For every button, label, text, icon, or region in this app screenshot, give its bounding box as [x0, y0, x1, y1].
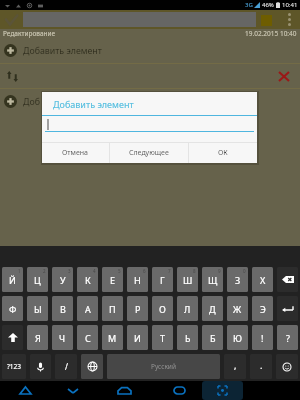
button[interactable]: !	[252, 325, 273, 350]
button[interactable]: Delete	[273, 64, 295, 88]
staticText: М	[108, 332, 117, 344]
staticText: Следующее	[129, 148, 169, 158]
button[interactable]: ОК	[189, 143, 257, 163]
button[interactable]: Следующее	[110, 143, 188, 163]
button[interactable]: С	[77, 325, 98, 350]
button[interactable]: Г	[152, 267, 173, 292]
staticText: Я	[35, 332, 41, 344]
staticText: 5	[118, 268, 121, 274]
staticText: 2	[43, 268, 46, 274]
staticText: ОК	[218, 148, 228, 158]
button[interactable]: Б	[202, 325, 223, 350]
button[interactable]: Change language	[81, 354, 103, 379]
staticText: Ш	[183, 274, 193, 286]
staticText: Ж	[233, 303, 242, 315]
button[interactable]: Delete	[0, 64, 300, 88]
staticText: Ь	[185, 332, 191, 344]
button[interactable]: Recent apps	[157, 381, 201, 400]
staticText: В	[60, 303, 66, 315]
staticText: 6	[143, 268, 146, 274]
button[interactable]: Л	[177, 296, 198, 321]
staticText: П	[109, 303, 116, 315]
button[interactable]: ?	[277, 325, 298, 350]
button[interactable]: З	[227, 267, 248, 292]
button[interactable]: Доб	[0, 89, 300, 114]
button[interactable]: Ь	[177, 325, 198, 350]
staticText: Л	[184, 303, 191, 315]
staticText: 1	[18, 268, 21, 274]
button[interactable]: М	[102, 325, 123, 350]
staticText: ?	[286, 332, 290, 344]
button[interactable]: .	[250, 354, 272, 379]
button[interactable]: Hide keyboard	[51, 381, 95, 400]
staticText: Отмена	[62, 148, 89, 158]
button[interactable]: В	[52, 296, 73, 321]
button[interactable]: Добавить элемент	[0, 38, 300, 63]
button[interactable]: Е	[102, 267, 123, 292]
staticText: ?123	[7, 362, 21, 371]
staticText: Р	[135, 303, 141, 315]
button[interactable]: О	[152, 296, 173, 321]
button[interactable]: Э	[252, 296, 273, 321]
staticText: Б	[210, 332, 216, 344]
button[interactable]: Х	[252, 267, 273, 292]
button[interactable]: Ц	[27, 267, 48, 292]
button[interactable]: Ы	[27, 296, 48, 321]
staticText: 9	[218, 268, 221, 274]
button[interactable]: Back	[3, 381, 47, 400]
staticText: Х	[260, 274, 266, 286]
button[interactable]: Emoji	[276, 354, 298, 379]
staticText: ,	[234, 359, 237, 371]
button[interactable]: Ш	[177, 267, 198, 292]
button[interactable]: Done	[0, 10, 22, 29]
button[interactable]: П	[102, 296, 123, 321]
button[interactable]: У	[52, 267, 73, 292]
button[interactable]: ?123	[2, 354, 26, 379]
staticText: 46%	[262, 1, 274, 9]
staticText: Т	[160, 332, 166, 344]
button[interactable]: Д	[202, 296, 223, 321]
button[interactable]: Switch keyboard	[202, 381, 243, 400]
button[interactable]: Ю	[227, 325, 248, 350]
staticText: Ы	[34, 303, 42, 315]
staticText: Ф	[9, 303, 17, 315]
staticText: 7	[168, 268, 171, 274]
staticText: Ч	[59, 332, 66, 344]
button[interactable]: К	[77, 267, 98, 292]
staticText: И	[134, 332, 141, 344]
button[interactable]: Ж	[227, 296, 248, 321]
button[interactable]: Т	[152, 325, 173, 350]
button[interactable]: Н	[127, 267, 148, 292]
button[interactable]: Home	[102, 381, 146, 400]
button[interactable]: Р	[127, 296, 148, 321]
staticText: Е	[110, 274, 116, 286]
button[interactable]: Я	[27, 325, 48, 350]
button[interactable]: ,	[224, 354, 246, 379]
staticText: У	[60, 274, 66, 286]
button[interactable]: Voice input	[30, 354, 51, 379]
staticText: Добавить элемент	[23, 45, 102, 57]
button[interactable]: Enter	[277, 296, 298, 321]
staticText: З	[235, 274, 241, 286]
button[interactable]: А	[77, 296, 98, 321]
staticText: С	[85, 332, 91, 344]
button[interactable]: Ч	[52, 325, 73, 350]
button[interactable]: И	[127, 325, 148, 350]
staticText: Д	[209, 303, 216, 315]
staticText: 3G	[245, 1, 253, 9]
staticText: Русский	[151, 362, 176, 371]
staticText: /	[65, 361, 68, 372]
button[interactable]: More options	[282, 10, 296, 29]
button[interactable]: Щ	[202, 267, 223, 292]
button[interactable]: Space	[107, 354, 220, 379]
staticText: Й	[9, 274, 16, 286]
button[interactable]: Ф	[2, 296, 23, 321]
staticText: Н	[134, 274, 141, 286]
button[interactable]: Отмена	[42, 143, 109, 163]
button[interactable]: /	[55, 354, 77, 379]
button[interactable]: Shift	[2, 325, 23, 350]
button[interactable]: Й	[2, 267, 23, 292]
button[interactable]: Backspace	[277, 267, 298, 292]
